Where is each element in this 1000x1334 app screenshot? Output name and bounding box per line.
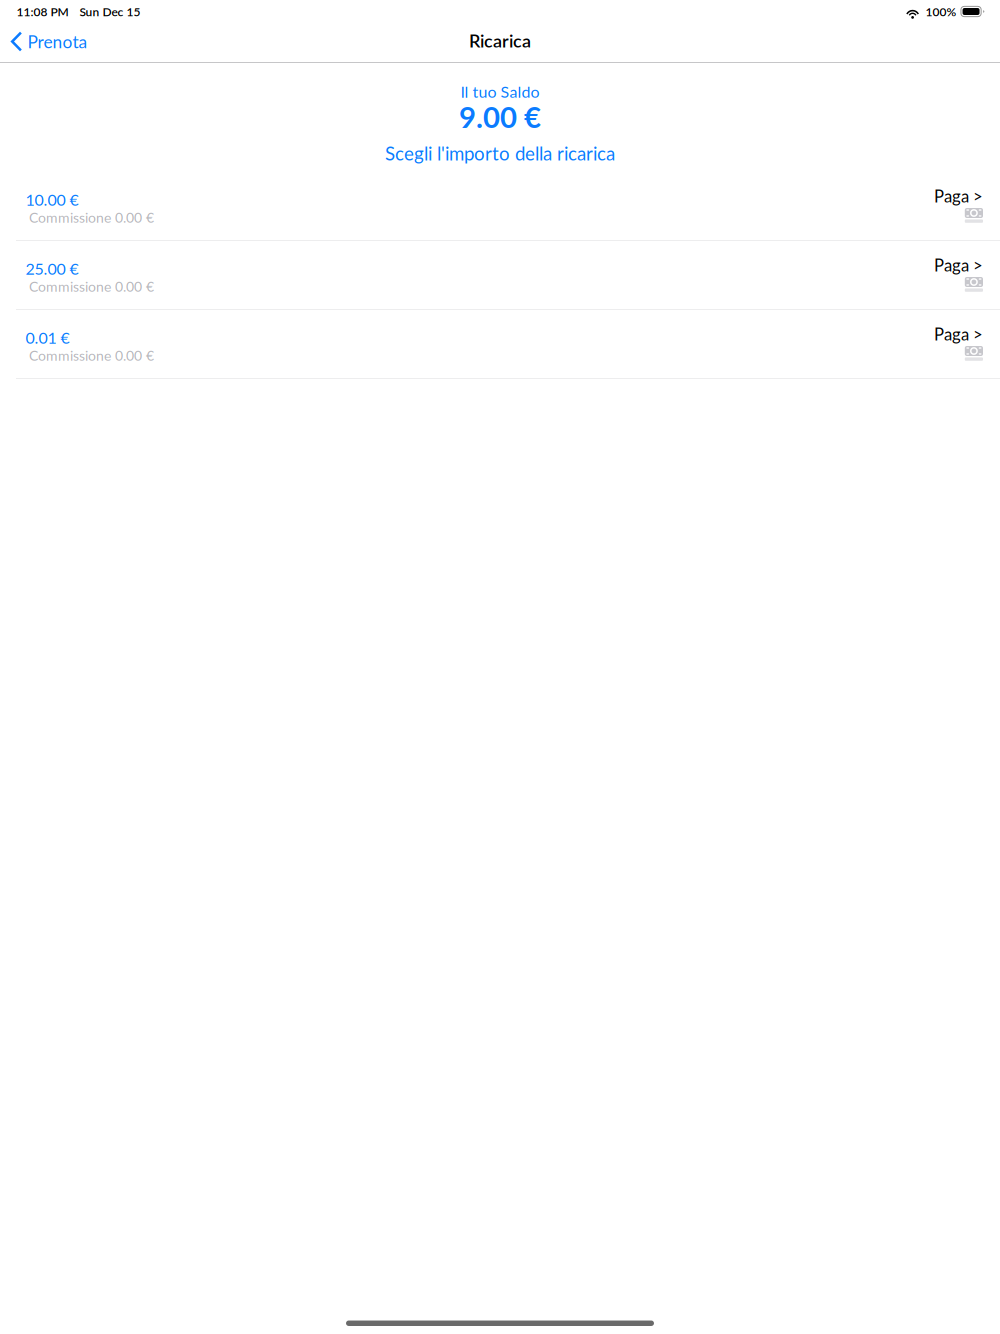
staticText: Sun Dec 15 (79, 4, 140, 19)
staticText: Commissione 0.00 € (29, 209, 154, 226)
staticText: Paga > (934, 324, 983, 344)
staticText: 10.00 € (25, 190, 78, 209)
button[interactable]: Prenota (0, 23, 97, 63)
staticText: 100% (925, 4, 956, 19)
staticText: Scegli l'importo della ricarica (385, 142, 615, 164)
staticText: Prenota (27, 31, 87, 52)
staticText: Paga > (934, 186, 983, 206)
staticText: 11:08 PM (16, 4, 68, 19)
staticText: Commissione 0.00 € (29, 278, 154, 295)
staticText: Commissione 0.00 € (29, 347, 154, 364)
staticText: 0.01 € (25, 328, 69, 347)
button[interactable]: 25.00 € (0, 241, 1000, 310)
staticText: 9.00 € (459, 99, 541, 134)
staticText: 25.00 € (25, 259, 78, 278)
button[interactable]: 10.00 € (0, 172, 1000, 241)
staticText: Il tuo Saldo (460, 82, 539, 101)
staticText: Ricarica (469, 30, 531, 51)
staticText: Paga > (934, 255, 983, 275)
button[interactable]: 0.01 € (0, 310, 1000, 379)
